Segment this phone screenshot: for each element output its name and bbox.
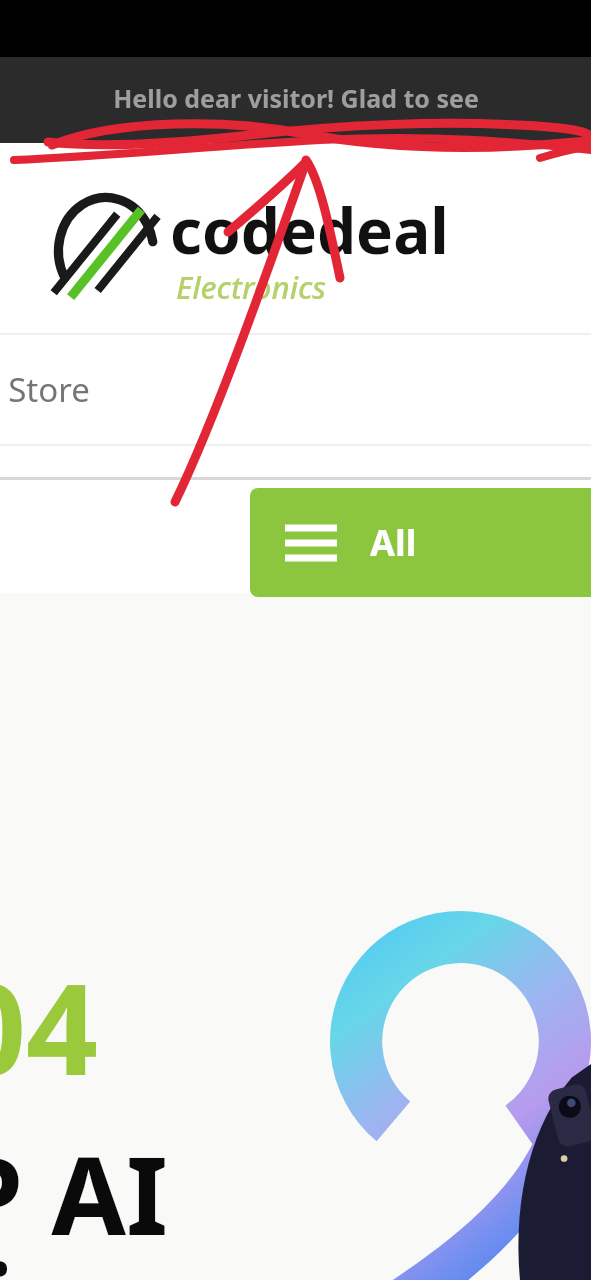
other: Menu — [285, 525, 337, 561]
button[interactable]: codedeal — [52, 188, 449, 314]
button[interactable]: Menu — [250, 488, 591, 597]
staticText: P AI — [0, 1120, 168, 1267]
button[interactable]: Hello dear visitor! Glad to see — [0, 57, 591, 143]
button[interactable]: r Store — [0, 335, 591, 445]
staticText: 04 — [0, 940, 99, 1112]
staticText: codedeal — [170, 188, 449, 272]
staticText: i: — [0, 1228, 45, 1280]
staticText: Hello dear visitor! Glad to see — [113, 81, 479, 115]
staticText: All categories — [370, 518, 591, 567]
staticText: Electronics — [176, 266, 327, 308]
staticText: r Store — [0, 367, 90, 412]
